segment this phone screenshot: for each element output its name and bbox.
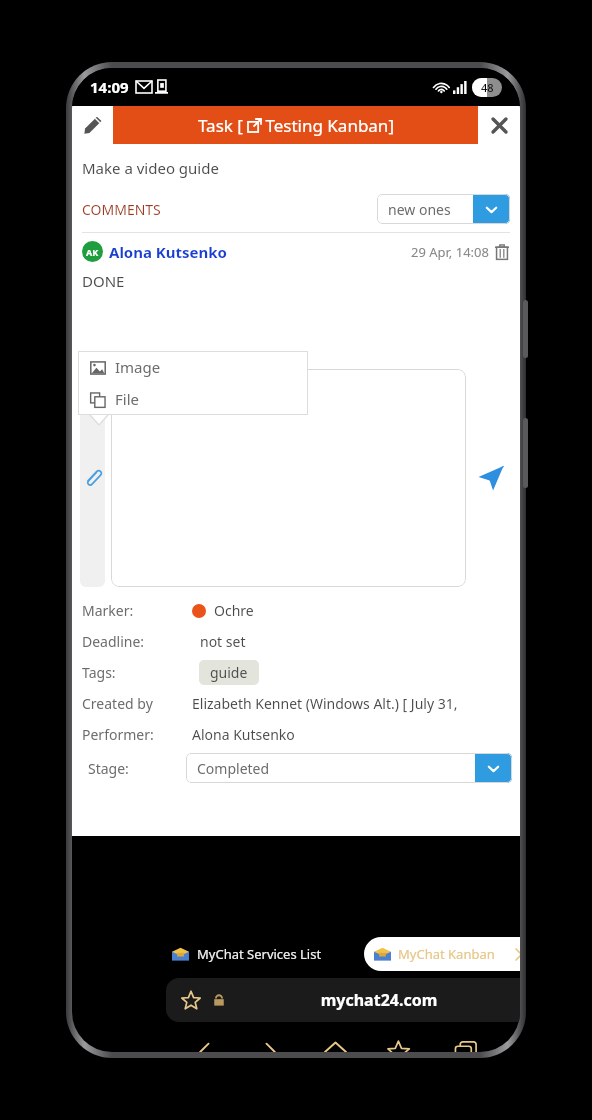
- staticText: 14:09: [90, 77, 129, 97]
- button[interactable]: More options: [507, 1028, 520, 1052]
- staticText: Completed: [197, 759, 475, 778]
- button[interactable]: Send: [466, 369, 516, 587]
- button[interactable]: Alona Kutsenko: [109, 242, 227, 262]
- staticText: Enter a comment here: [122, 377, 280, 397]
- button[interactable]: MyChat Kanban: [364, 937, 520, 971]
- staticText: Deadline:: [82, 632, 145, 651]
- staticText: Ochre: [214, 601, 254, 620]
- button[interactable]: Completed: [186, 753, 512, 783]
- staticText: Alona Kutsenko: [192, 725, 295, 744]
- button[interactable]: Task [: [113, 106, 478, 144]
- staticText: File: [115, 389, 139, 409]
- button[interactable]: Forward: [246, 1028, 294, 1052]
- staticText: 29 Apr, 14:08: [411, 243, 489, 261]
- button[interactable]: MyChat Services List: [158, 945, 364, 963]
- staticText: AK: [86, 246, 99, 258]
- staticText: MyChat Services List: [197, 945, 322, 963]
- staticText: new ones: [388, 200, 473, 219]
- button[interactable]: Bookmarks: [377, 1028, 425, 1052]
- staticText: Created by: [82, 694, 153, 713]
- button[interactable]: Close tab: [510, 943, 520, 965]
- button[interactable]: new ones: [377, 194, 510, 224]
- staticText: Task [: [198, 114, 248, 137]
- button[interactable]: Attach: [80, 369, 105, 587]
- button[interactable]: Delete comment: [494, 244, 510, 260]
- staticText: Make a video guide: [82, 158, 219, 178]
- button[interactable]: Close: [478, 106, 520, 144]
- staticText: guide: [210, 663, 248, 682]
- staticText: Tags:: [82, 663, 116, 682]
- staticText: Testing Kanban]: [261, 114, 394, 137]
- button[interactable]: Home: [311, 1028, 359, 1052]
- staticText: Elizabeth Kennet (Windows Alt.) [ July 3…: [192, 694, 458, 713]
- staticText: COMMENTS: [82, 200, 161, 219]
- button[interactable]: Image: [78, 351, 308, 383]
- staticText: mychat24.com: [226, 989, 520, 1011]
- button[interactable]: Enter a comment here: [111, 369, 466, 587]
- staticText: 48: [481, 80, 494, 95]
- button[interactable]: Tabs: [442, 1028, 490, 1052]
- button[interactable]: Edit: [72, 106, 113, 144]
- button[interactable]: Bookmark: [166, 978, 520, 1022]
- button[interactable]: Bookmark: [180, 989, 202, 1011]
- staticText: Performer:: [82, 725, 154, 744]
- staticText: Stage:: [88, 759, 129, 778]
- button[interactable]: File: [78, 383, 308, 415]
- staticText: DONE: [82, 271, 125, 291]
- staticText: MyChat Kanban: [398, 945, 510, 963]
- button[interactable]: guide: [199, 660, 259, 685]
- staticText: Image: [115, 357, 161, 377]
- staticText: not set: [200, 632, 246, 651]
- button[interactable]: Back: [181, 1028, 229, 1052]
- staticText: Marker:: [82, 601, 134, 620]
